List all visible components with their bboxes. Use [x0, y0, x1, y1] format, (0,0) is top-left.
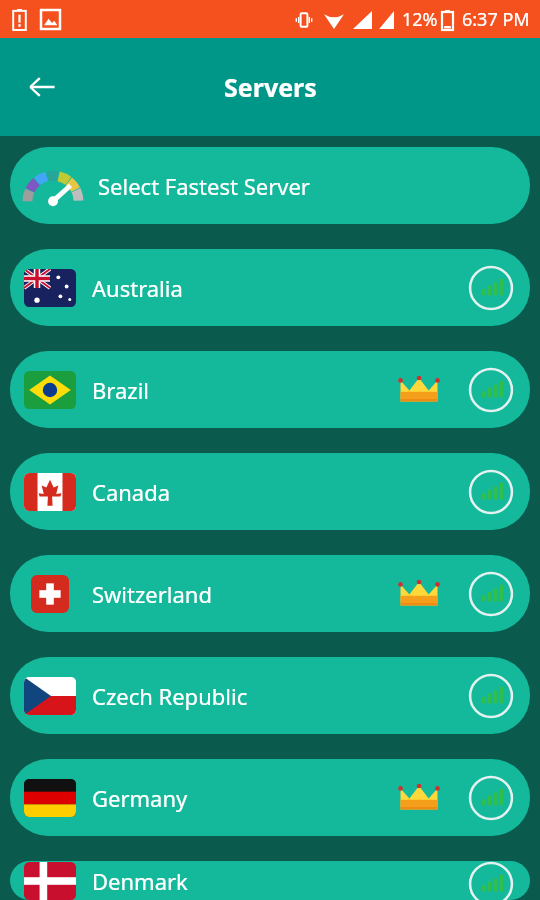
staticText: Germany	[92, 783, 188, 813]
button[interactable]: Switzerland	[10, 555, 530, 632]
button[interactable]: Back	[14, 59, 70, 115]
button[interactable]: Czech Republic	[10, 657, 530, 734]
button[interactable]: Australia	[10, 249, 530, 326]
button[interactable]: Select Fastest Server	[10, 147, 530, 224]
button[interactable]: Canada	[10, 453, 530, 530]
staticText: Brazil	[92, 375, 149, 405]
staticText: Czech Republic	[92, 681, 248, 711]
staticText: Select Fastest Server	[98, 171, 310, 201]
staticText: Switzerland	[92, 579, 212, 609]
staticText: Denmark	[92, 866, 188, 896]
staticText: Canada	[92, 477, 171, 507]
button[interactable]: Germany	[10, 759, 530, 836]
staticText: Australia	[92, 273, 183, 303]
button[interactable]: Denmark	[10, 861, 530, 900]
staticText: 6:37 PM	[462, 7, 530, 32]
button[interactable]: Brazil	[10, 351, 530, 428]
staticText: Servers	[224, 70, 317, 104]
staticText: 12%	[402, 7, 438, 32]
